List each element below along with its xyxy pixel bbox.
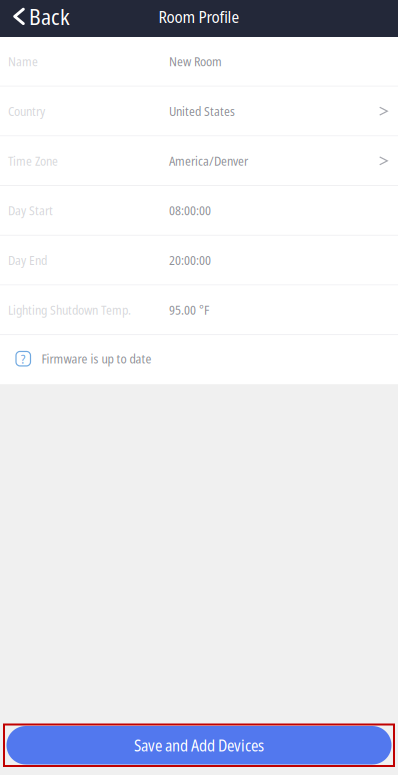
button[interactable]: Lighting Shutdown Temp. [0, 285, 398, 335]
staticText: ? [21, 350, 26, 368]
button[interactable]: Name [0, 37, 398, 87]
staticText: 95.00 °F [169, 301, 209, 318]
staticText: Firmware is up to date [41, 350, 151, 367]
staticText: Day Start [8, 202, 53, 219]
staticText: America/Denver [169, 152, 248, 169]
staticText: Day End [8, 251, 47, 269]
staticText: 08:00:00 [169, 202, 211, 219]
staticText: New Room [169, 53, 222, 70]
button[interactable]: Back [0, 0, 92, 37]
staticText: Room Profile [158, 5, 239, 28]
staticText: Country [8, 102, 45, 120]
button[interactable]: Country [0, 87, 398, 136]
button[interactable]: Day Start [0, 186, 398, 236]
staticText: Back [29, 1, 70, 31]
staticText: Name [8, 53, 38, 70]
staticText: 20:00:00 [169, 251, 211, 269]
button[interactable]: Day End [0, 236, 398, 285]
staticText: Time Zone [8, 152, 58, 169]
button[interactable]: Save and Add Devices [4, 724, 394, 766]
button[interactable]: Time Zone [0, 136, 398, 186]
staticText: Lighting Shutdown Temp. [8, 301, 131, 318]
staticText: Save and Add Devices [134, 734, 264, 756]
staticText: United States [169, 102, 235, 120]
button[interactable]: ? [0, 335, 398, 384]
